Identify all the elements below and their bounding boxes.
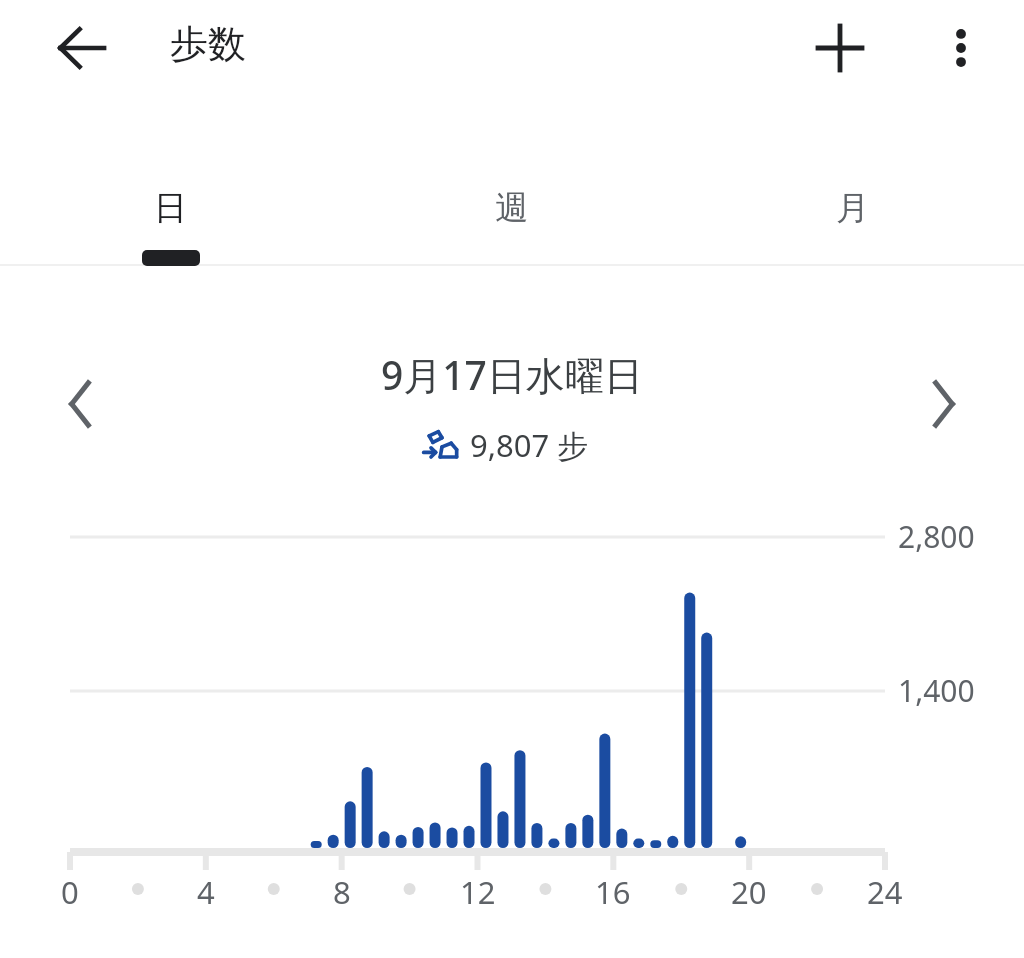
staticText: 0 xyxy=(61,871,79,913)
button[interactable]: More options xyxy=(927,14,995,82)
staticText: 9月17日水曜日 xyxy=(381,348,643,401)
staticText: 週 xyxy=(495,187,528,229)
button[interactable]: Add xyxy=(806,14,874,82)
staticText: 16 xyxy=(595,871,631,913)
staticText: 月 xyxy=(836,187,869,229)
staticText: 8 xyxy=(333,871,351,913)
staticText: 歩数 xyxy=(170,20,246,68)
staticText: 日 xyxy=(154,187,187,229)
staticText: 2,800 xyxy=(898,516,975,557)
button[interactable]: 日 xyxy=(60,150,280,265)
staticText: 1,400 xyxy=(898,670,975,711)
button[interactable]: 週 xyxy=(401,150,621,265)
button[interactable]: Back xyxy=(48,14,116,82)
staticText: 24 xyxy=(867,871,903,913)
button[interactable]: Previous day xyxy=(44,368,116,440)
staticText: 4 xyxy=(197,871,215,913)
button[interactable]: Next day xyxy=(908,368,980,440)
staticText: 20 xyxy=(731,871,767,913)
button[interactable]: 月 xyxy=(742,150,962,265)
staticText: 12 xyxy=(460,871,496,913)
staticText: 9,807 步 xyxy=(470,424,589,466)
